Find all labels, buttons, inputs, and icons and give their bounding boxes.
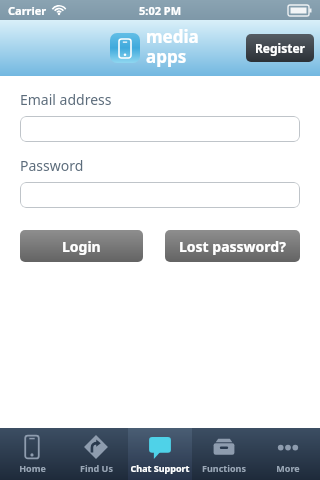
staticText: Password: [20, 156, 84, 175]
staticText: More: [276, 462, 300, 474]
button[interactable]: Register: [246, 34, 314, 62]
button[interactable]: More: [256, 428, 320, 480]
staticText: Lost password?: [179, 237, 286, 256]
staticText: Chat Support: [130, 462, 190, 474]
button[interactable]: [20, 116, 300, 142]
staticText: Find Us: [80, 462, 113, 474]
staticText: Carrier: [8, 3, 47, 18]
button[interactable]: Login: [20, 230, 143, 262]
button[interactable]: Functions: [192, 428, 256, 480]
staticText: 5:02 PM: [139, 3, 182, 18]
button[interactable]: Find Us: [64, 428, 128, 480]
staticText: apps: [146, 45, 187, 68]
button[interactable]: Chat Support: [128, 428, 192, 480]
staticText: media: [146, 25, 199, 48]
staticText: Home: [19, 462, 46, 474]
staticText: Email address: [20, 90, 112, 109]
button[interactable]: Lost password?: [165, 230, 300, 262]
staticText: Login: [62, 237, 101, 256]
button[interactable]: [20, 182, 300, 208]
staticText: Functions: [202, 462, 246, 474]
button[interactable]: Home: [0, 428, 64, 480]
staticText: Register: [255, 40, 305, 56]
